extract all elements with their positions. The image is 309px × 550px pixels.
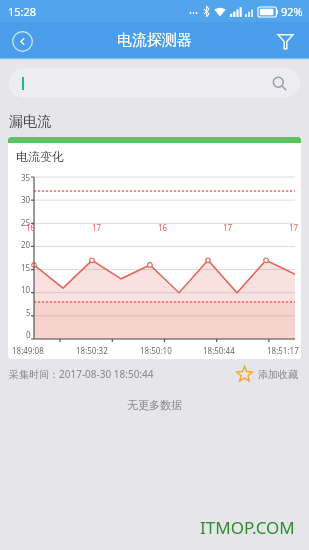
staticText: 电流变化 xyxy=(16,149,64,164)
staticText: 18:50:44 xyxy=(203,345,235,356)
staticText: 0 xyxy=(26,329,31,339)
staticText: 20 xyxy=(21,239,31,249)
button[interactable]: 电流变化 xyxy=(8,137,301,359)
staticText: 16 xyxy=(26,222,36,233)
staticText: 17 xyxy=(92,222,102,233)
staticText: 漏电流 xyxy=(9,113,51,131)
staticText: ITMOP.COM xyxy=(200,516,295,539)
staticText: 92% xyxy=(281,4,303,19)
staticText: 15:28 xyxy=(8,4,37,19)
staticText: 5 xyxy=(26,307,31,317)
staticText: 采集时间：2017-08-30 18:50:44 xyxy=(9,367,154,381)
staticText: 16 xyxy=(158,222,168,233)
staticText: 添加收藏 xyxy=(258,368,298,381)
button[interactable] xyxy=(9,68,300,98)
staticText: 18:51:17 xyxy=(267,345,299,356)
staticText: 30 xyxy=(21,194,31,204)
staticText: 18:49:08 xyxy=(12,345,44,356)
staticText: 35 xyxy=(21,172,31,182)
button[interactable]: Filter xyxy=(269,25,301,57)
staticText: 电流探测器 xyxy=(117,31,192,50)
staticText: 15 xyxy=(21,262,31,272)
staticText: 17 xyxy=(223,222,233,233)
staticText: 25 xyxy=(21,217,31,227)
button[interactable]: 添加收藏 xyxy=(234,364,300,385)
staticText: 18:50:10 xyxy=(140,345,172,356)
button[interactable]: Back xyxy=(6,25,38,57)
staticText: 10 xyxy=(21,284,31,294)
staticText: 18:50:32 xyxy=(76,345,108,356)
staticText: 无更多数据 xyxy=(127,398,182,412)
staticText: 17 xyxy=(289,222,299,233)
